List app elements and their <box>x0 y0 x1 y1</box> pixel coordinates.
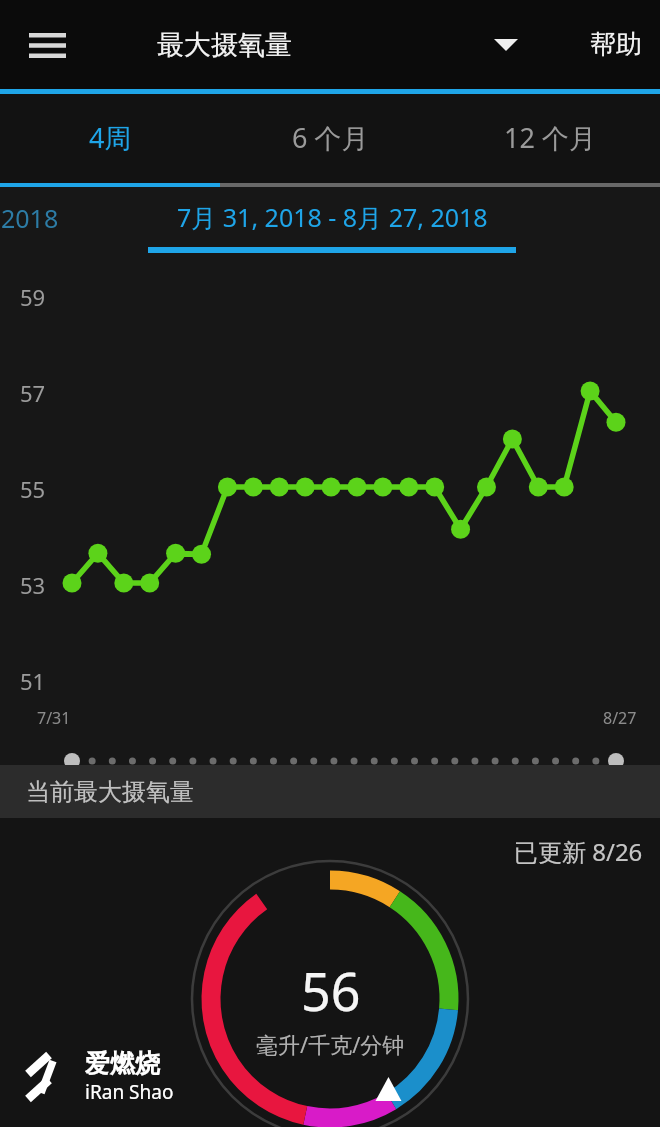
button[interactable]: 7月 31, 2018 - 8月 27, 2018 <box>148 187 516 234</box>
staticText: 爱燃烧 <box>85 1048 160 1079</box>
button[interactable]: 帮助 <box>590 28 642 61</box>
staticText: 8/27 <box>603 707 637 729</box>
staticText: 7/31 <box>37 707 71 729</box>
button[interactable]: 4周 <box>0 94 220 187</box>
button[interactable]: 12 个月 <box>440 94 660 187</box>
button[interactable]: 6 个月 <box>220 94 440 187</box>
staticText: 56 <box>301 955 361 1026</box>
staticText: 51 <box>20 666 46 696</box>
button[interactable]: Expand chart type <box>476 15 536 75</box>
staticText: 59 <box>20 282 46 312</box>
staticText: 53 <box>20 570 46 600</box>
staticText: 7月 31, 2018 - 8月 27, 2018 <box>177 200 488 234</box>
staticText: 55 <box>20 474 46 504</box>
staticText: 最大摄氧量 <box>157 28 292 62</box>
staticText: 4周 <box>89 119 132 156</box>
button[interactable]: VO2 Max 56 <box>190 859 470 1127</box>
staticText: 6 个月 <box>292 119 369 156</box>
button[interactable]: Menu <box>14 12 80 78</box>
staticText: 帮助 <box>590 28 642 61</box>
staticText: 已更新 8/26 <box>514 835 643 868</box>
staticText: iRan Shao <box>85 1079 174 1105</box>
staticText: 2018 <box>1 201 59 235</box>
staticText: 12 个月 <box>504 119 596 156</box>
staticText: 毫升/千克/分钟 <box>256 1029 405 1059</box>
staticText: 当前最大摄氧量 <box>26 777 194 807</box>
staticText: 57 <box>20 378 46 408</box>
